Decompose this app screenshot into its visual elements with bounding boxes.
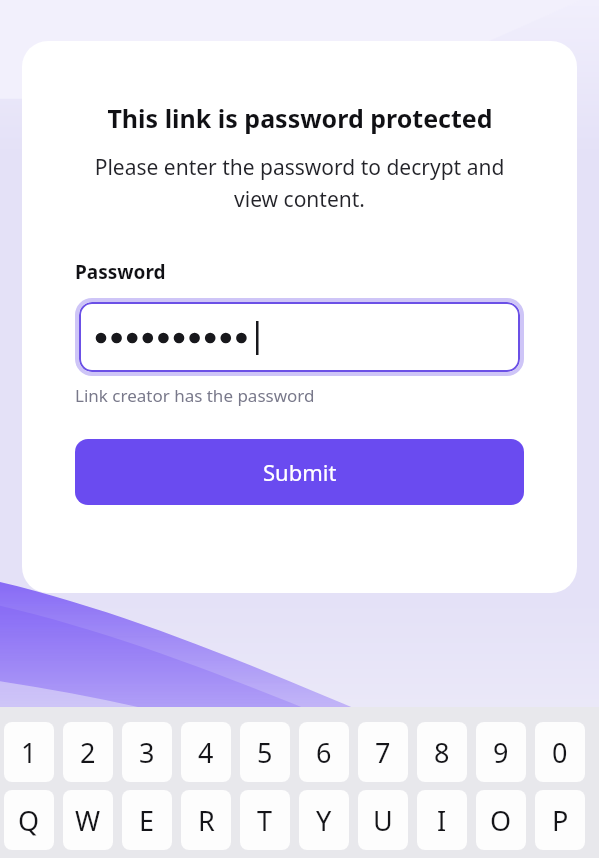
staticText: 3 [139,734,155,771]
staticText: Y [316,802,332,839]
staticText: 7 [375,734,391,771]
staticText: Please enter the password to decrypt and… [75,153,524,213]
button[interactable]: W [63,790,113,850]
button[interactable]: E [122,790,172,850]
button[interactable]: 4 [181,722,231,782]
staticText: R [198,802,215,839]
staticText: U [373,802,393,839]
button[interactable]: 7 [358,722,408,782]
button[interactable]: P [535,790,585,850]
button[interactable]: 2 [63,722,113,782]
staticText: 4 [198,734,214,771]
staticText: Password [75,259,166,285]
staticText: P [552,802,569,839]
staticText: Submit [263,457,337,487]
button[interactable]: 8 [417,722,467,782]
staticText: Q [18,802,40,839]
staticText: E [139,802,155,839]
button[interactable]: 5 [240,722,290,782]
staticText: 8 [434,734,450,771]
button[interactable]: T [240,790,290,850]
staticText: 6 [316,734,332,771]
staticText: O [490,802,512,839]
button[interactable]: Password input [79,302,520,372]
button[interactable]: 0 [535,722,585,782]
button[interactable]: O [476,790,526,850]
button[interactable]: Q [4,790,54,850]
button[interactable]: 1 [4,722,54,782]
staticText: 0 [552,734,568,771]
button[interactable]: Y [299,790,349,850]
staticText: This link is password protected [107,101,493,135]
button[interactable]: Submit [75,439,524,505]
staticText: I [437,802,447,839]
staticText: Link creator has the password [75,384,315,407]
staticText: 2 [80,734,96,771]
button[interactable]: 6 [299,722,349,782]
button[interactable]: U [358,790,408,850]
staticText: 5 [257,734,273,771]
staticText: 9 [493,734,509,771]
staticText: 1 [21,734,37,771]
staticText: T [257,802,273,839]
button[interactable]: 3 [122,722,172,782]
staticText: W [75,802,101,839]
button[interactable]: R [181,790,231,850]
button[interactable]: 9 [476,722,526,782]
button[interactable]: I [417,790,467,850]
